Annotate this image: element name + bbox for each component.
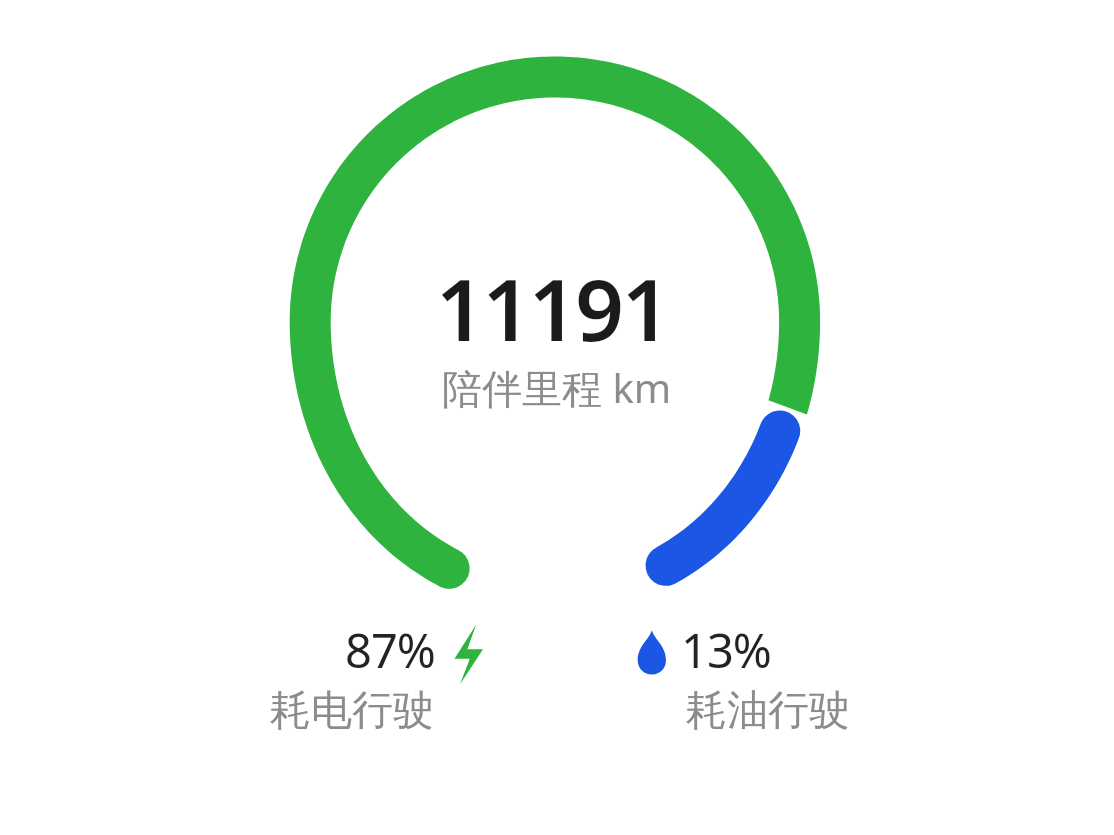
button[interactable]: 87% <box>235 618 435 682</box>
staticText: 耗油行驶 <box>686 685 850 737</box>
staticText: 87% <box>345 618 435 682</box>
button[interactable]: 耗油行驶 <box>686 685 896 743</box>
staticText: 陪伴里程 km <box>442 360 672 415</box>
button[interactable]: 13% <box>681 618 881 682</box>
staticText: 耗电行驶 <box>270 685 434 737</box>
staticText: 13% <box>681 618 771 682</box>
button[interactable]: 耗电行驶 <box>234 685 434 743</box>
staticText: 11191 <box>436 250 669 366</box>
